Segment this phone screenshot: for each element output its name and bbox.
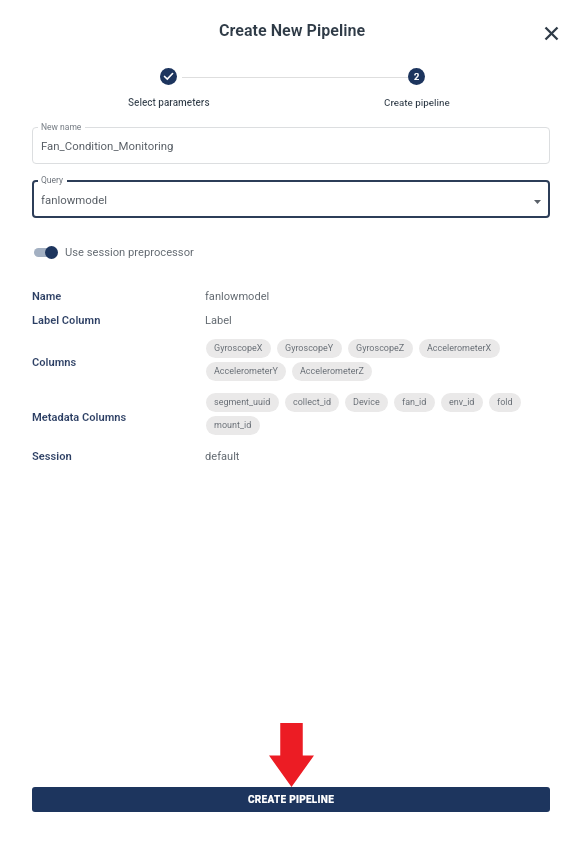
staticText: collect_id bbox=[293, 397, 331, 408]
staticText: Create New Pipeline bbox=[219, 21, 366, 40]
staticText: Metadata Columns bbox=[32, 411, 127, 424]
staticText: env_id bbox=[449, 397, 475, 408]
staticText: fanlowmodel bbox=[205, 290, 270, 303]
staticText: fan_id bbox=[402, 397, 427, 408]
button[interactable]: Select parameters bbox=[120, 64, 217, 112]
staticText: fanlowmodel bbox=[41, 193, 107, 206]
staticText: Use session preprocessor bbox=[65, 246, 194, 259]
staticText: Label Column bbox=[32, 314, 101, 327]
staticText: Columns bbox=[32, 356, 77, 369]
staticText: GyroscopeZ bbox=[356, 343, 405, 354]
button[interactable]: CREATE PIPELINE bbox=[32, 787, 550, 812]
staticText: default bbox=[205, 450, 240, 463]
staticText: Label bbox=[205, 314, 232, 327]
staticText: Select parameters bbox=[128, 97, 210, 109]
staticText: Session bbox=[32, 450, 72, 463]
staticText: 2 bbox=[414, 71, 420, 82]
staticText: New name bbox=[41, 122, 82, 132]
staticText: segment_uuid bbox=[214, 397, 271, 408]
staticText: AccelerometerZ bbox=[300, 366, 364, 377]
button[interactable] bbox=[32, 180, 550, 218]
staticText: fold bbox=[497, 397, 513, 408]
staticText: GyroscopeY bbox=[285, 343, 334, 354]
button[interactable]: segment_uuid bbox=[206, 393, 279, 412]
staticText: Fan_Condition_Monitoring bbox=[41, 139, 174, 152]
staticText: GyroscopeX bbox=[214, 343, 263, 354]
staticText: Name bbox=[32, 290, 62, 303]
button[interactable]: Device bbox=[345, 393, 388, 412]
button[interactable]: collect_id bbox=[285, 393, 339, 412]
staticText: mount_id bbox=[214, 420, 252, 431]
button[interactable]: fold bbox=[489, 393, 521, 412]
button[interactable]: Close bbox=[536, 18, 566, 48]
staticText: AccelerometerY bbox=[214, 366, 278, 377]
button[interactable]: 2 bbox=[368, 64, 465, 112]
button[interactable]: AccelerometerX bbox=[419, 339, 500, 358]
button[interactable]: env_id bbox=[441, 393, 483, 412]
button[interactable]: AccelerometerY bbox=[206, 362, 286, 381]
button[interactable]: GyroscopeY bbox=[277, 339, 342, 358]
button[interactable]: GyroscopeX bbox=[206, 339, 271, 358]
staticText: Device bbox=[353, 397, 380, 408]
button[interactable]: mount_id bbox=[206, 416, 260, 435]
staticText: AccelerometerX bbox=[427, 343, 492, 354]
button[interactable]: fan_id bbox=[394, 393, 435, 412]
staticText: Create pipeline bbox=[384, 97, 450, 108]
button[interactable]: AccelerometerZ bbox=[292, 362, 372, 381]
button[interactable]: Use session preprocessor bbox=[32, 245, 194, 259]
staticText: CREATE PIPELINE bbox=[248, 794, 335, 806]
button[interactable] bbox=[32, 127, 550, 164]
staticText: Query bbox=[41, 175, 64, 185]
button[interactable]: GyroscopeZ bbox=[348, 339, 413, 358]
